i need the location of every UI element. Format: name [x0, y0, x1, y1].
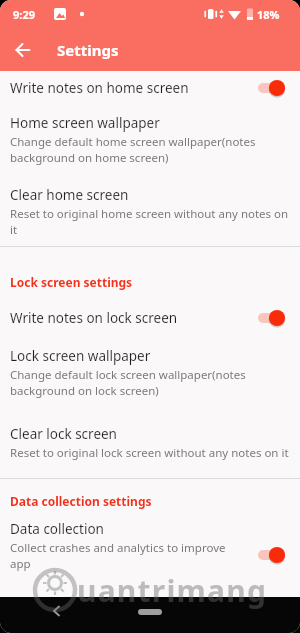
staticText: Settings — [57, 40, 119, 60]
staticText: Data collection — [10, 520, 104, 538]
staticText: Change default home screen wallpaper(not… — [10, 134, 275, 165]
staticText: Write notes on lock screen — [10, 309, 178, 327]
staticText: Collect crashes and analytics to improve… — [10, 540, 230, 571]
staticText: Data collection settings — [10, 493, 152, 509]
button[interactable]: Data collection — [0, 520, 300, 571]
button[interactable]: Clear lock screen — [0, 425, 300, 461]
staticText: Lock screen wallpaper — [10, 347, 151, 365]
staticText: Change default lock screen wallpaper(not… — [10, 367, 275, 398]
staticText: Lock screen settings — [10, 274, 133, 290]
staticText: Reset to original lock screen without an… — [10, 445, 300, 461]
staticText: Reset to original home screen without an… — [10, 206, 292, 237]
button[interactable] — [138, 609, 162, 615]
button[interactable]: Home screen wallpaper — [0, 114, 300, 165]
staticText: Clear lock screen — [10, 425, 117, 443]
button[interactable] — [52, 606, 61, 616]
staticText: Write notes on home screen — [10, 79, 189, 97]
button[interactable] — [16, 43, 30, 57]
staticText: Home screen wallpaper — [10, 114, 160, 132]
button[interactable]: Write notes on lock screen — [0, 301, 300, 335]
button[interactable]: Data collection — [0, 520, 300, 571]
staticText: 9:29 — [13, 7, 35, 22]
staticText: Clear home screen — [10, 186, 129, 204]
staticText: uantrimang — [77, 570, 268, 611]
staticText: 18% — [257, 7, 280, 22]
button[interactable]: Lock screen wallpaper — [0, 347, 300, 398]
button[interactable]: Write notes on home screen — [0, 71, 300, 105]
button[interactable]: Clear home screen — [0, 186, 300, 237]
